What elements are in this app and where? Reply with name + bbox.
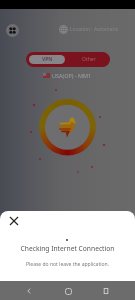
button[interactable]: Apps xyxy=(6,24,19,37)
button[interactable]: Other xyxy=(68,52,110,67)
staticText: Other xyxy=(82,56,96,63)
button[interactable]: VPN xyxy=(29,55,65,64)
staticText: Location : Automatic xyxy=(70,26,119,33)
button[interactable]: Recents xyxy=(97,282,115,300)
button[interactable]: Location : Automatic xyxy=(59,25,119,34)
staticText: USA(OP) - MM1 xyxy=(52,72,92,79)
button[interactable]: Close xyxy=(7,214,20,227)
staticText: Please do not leave the application. xyxy=(0,261,135,268)
button[interactable]: Home xyxy=(59,282,77,300)
staticText: VPN xyxy=(42,56,53,63)
staticText: Checking Internet Connection xyxy=(0,244,135,253)
button[interactable]: Back xyxy=(20,282,38,300)
